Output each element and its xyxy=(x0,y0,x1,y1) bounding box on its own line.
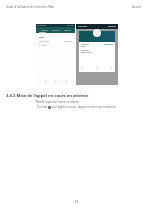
button[interactable] xyxy=(36,41,75,42)
button[interactable]: Accueil xyxy=(132,5,142,9)
staticText: Accueil xyxy=(132,5,142,9)
button[interactable] xyxy=(36,44,75,46)
staticText: Guide d'utilisation de l'interface Web xyxy=(6,5,55,9)
staticText: - 28 - xyxy=(73,200,80,204)
staticText: Touchez xyxy=(37,105,48,109)
button[interactable]: Photo du contact xyxy=(93,29,101,37)
button[interactable] xyxy=(79,50,94,53)
staticText: 3.4.2 Mise de l'appel en cours en attent… xyxy=(6,93,89,99)
button[interactable] xyxy=(79,44,115,47)
staticText: sur l'appel en cours, l'appel est alors … xyxy=(51,105,117,109)
staticText: Mettre l'appel en cours en attente : xyxy=(36,100,81,104)
